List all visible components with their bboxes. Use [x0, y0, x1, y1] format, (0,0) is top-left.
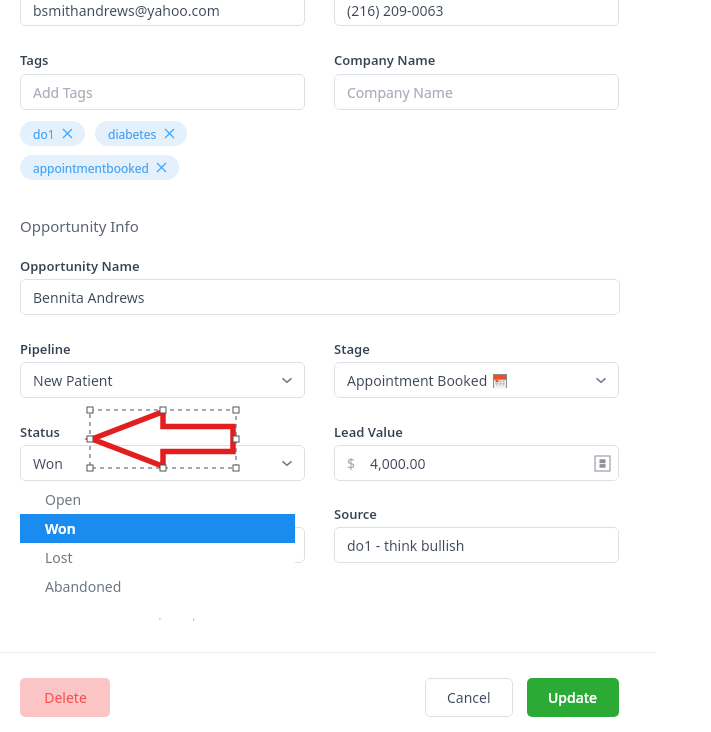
button[interactable]: Abandoned	[20, 572, 295, 601]
staticText: Update	[548, 688, 598, 707]
button[interactable]: Appointment Booked	[334, 362, 619, 398]
staticText: Won	[45, 519, 76, 538]
button[interactable]: Won	[20, 445, 305, 481]
button[interactable]: Lost	[20, 543, 295, 572]
staticText: appointmentbooked	[33, 160, 149, 176]
button[interactable]: diabetes	[95, 121, 187, 146]
button[interactable]: bsmithandrews@yahoo.com	[20, 0, 305, 26]
button[interactable]: Open	[20, 485, 295, 514]
staticText: Abandoned	[45, 577, 122, 596]
staticText: Status	[20, 423, 61, 441]
button[interactable]: Cancel	[425, 678, 513, 717]
staticText: Bennita Andrews	[33, 288, 145, 307]
staticText: Company Name	[347, 83, 453, 102]
staticText: Add Tags	[33, 83, 93, 102]
button[interactable]: do1 - think bullish	[334, 527, 619, 563]
button[interactable]: Add Tags	[20, 74, 305, 110]
staticText: Pipeline	[20, 340, 71, 358]
staticText: Opportunity Info	[20, 216, 139, 236]
staticText: bsmithandrews@yahoo.com	[33, 1, 220, 20]
staticText: do1	[33, 126, 55, 142]
staticText: diabetes	[108, 126, 157, 142]
staticText: (216) 209-0063	[347, 1, 444, 20]
staticText: Stage	[334, 340, 370, 358]
button[interactable]: Won	[20, 514, 295, 543]
staticText: 4,000.00	[370, 454, 426, 473]
button[interactable]: do1	[20, 121, 85, 146]
staticText: Lost	[45, 548, 73, 567]
button[interactable]: Delete	[20, 678, 110, 717]
staticText: Cancel	[447, 688, 491, 707]
staticText: Appointment Booked	[347, 371, 488, 390]
staticText: do1 - think bullish	[347, 536, 465, 555]
button[interactable]: Bennita Andrews	[20, 279, 620, 315]
other: Annotation arrow pointing to Status fiel…	[88, 408, 238, 470]
staticText: Source	[334, 505, 377, 523]
staticText: Won	[33, 454, 63, 473]
button[interactable]: Update	[527, 678, 619, 717]
button[interactable]: Company Name	[334, 74, 619, 110]
staticText: New Patient	[33, 371, 113, 390]
button[interactable]: (216) 209-0063	[334, 0, 619, 26]
staticText: $	[347, 454, 356, 473]
staticText: Opportunity Name	[20, 257, 140, 275]
button[interactable]: New Patient	[20, 362, 305, 398]
button[interactable]: $	[334, 445, 619, 481]
staticText: Tags	[20, 51, 49, 69]
staticText: Lead Value	[334, 423, 403, 441]
staticText: Delete	[44, 688, 87, 707]
staticText: Open	[45, 490, 82, 509]
button[interactable]: appointmentbooked	[20, 155, 179, 180]
staticText: Company Name	[334, 51, 436, 69]
